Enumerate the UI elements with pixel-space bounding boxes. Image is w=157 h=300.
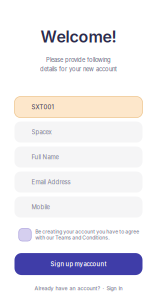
staticText: Sign up my account	[50, 260, 106, 268]
button[interactable]: Sign up my account	[14, 253, 142, 275]
staticText: Welcome!	[40, 27, 116, 46]
staticText: Already have an account? · Sign In	[34, 285, 122, 292]
staticText: SXT001	[31, 103, 53, 111]
button[interactable]: Already have an account? · Sign In	[34, 285, 122, 292]
button[interactable]: Agree to terms and conditions	[19, 229, 31, 241]
staticText: Full Name	[31, 153, 58, 161]
button[interactable]: SXT001	[14, 97, 142, 118]
staticText: details for your new account	[40, 65, 117, 73]
button[interactable]: Email Address	[14, 172, 142, 193]
staticText: Please provide following	[46, 56, 111, 63]
button[interactable]: Full Name	[14, 147, 142, 168]
staticText: Email Address	[31, 178, 70, 186]
staticText: Be creating your account you have to agr…	[35, 229, 139, 241]
staticText: Spacex	[31, 128, 51, 136]
staticText: Mobile	[31, 203, 49, 211]
button[interactable]: Mobile	[14, 197, 142, 218]
button[interactable]: Spacex	[14, 122, 142, 143]
